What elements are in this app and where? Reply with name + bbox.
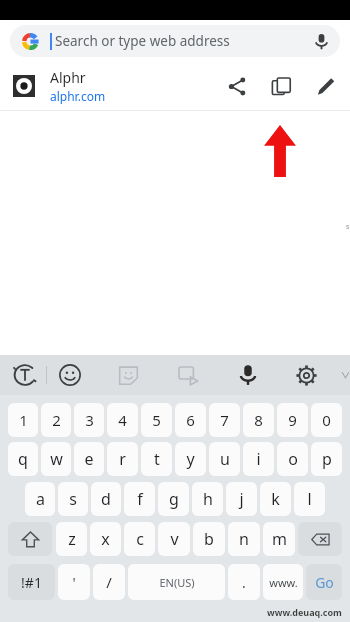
button[interactable]: g <box>158 482 189 516</box>
button[interactable]: i <box>243 442 274 476</box>
button[interactable]: u <box>209 442 240 476</box>
staticText: i <box>256 448 261 470</box>
button[interactable]: Shift <box>8 522 52 556</box>
staticText: 9 <box>288 410 297 430</box>
button[interactable]: v <box>158 522 190 556</box>
button[interactable]: p <box>311 442 342 476</box>
staticText: x <box>101 528 110 550</box>
staticText: n <box>239 528 249 550</box>
staticText: o <box>288 448 298 470</box>
button[interactable]: a <box>25 482 55 516</box>
button[interactable]: 7 <box>209 403 240 437</box>
staticText: e <box>84 448 94 470</box>
staticText: u <box>220 448 230 470</box>
staticText: Go <box>315 573 334 592</box>
button[interactable]: l <box>294 482 325 516</box>
button[interactable]: d <box>91 482 121 516</box>
staticText: m <box>272 528 287 550</box>
button[interactable]: Emoji <box>55 360 85 390</box>
button[interactable]: k <box>260 482 291 516</box>
button[interactable]: Translate <box>10 360 40 390</box>
button[interactable]: EN(US) <box>128 564 225 600</box>
staticText: Search or type web address <box>55 32 230 50</box>
staticText: q <box>18 448 28 470</box>
button[interactable]: Voice input <box>233 360 263 390</box>
button[interactable]: 5 <box>141 403 172 437</box>
button[interactable]: b <box>193 522 225 556</box>
button[interactable]: e <box>74 442 104 476</box>
button[interactable]: 0 <box>311 403 342 437</box>
staticText: 8 <box>254 410 263 430</box>
button[interactable]: GIF <box>173 360 203 390</box>
button[interactable]: 4 <box>107 403 138 437</box>
staticText: j <box>239 488 244 510</box>
button[interactable]: www. <box>263 564 303 600</box>
button[interactable]: h <box>192 482 223 516</box>
button[interactable]: o <box>277 442 308 476</box>
staticText: k <box>271 488 280 510</box>
button[interactable]: Tabs <box>266 71 296 101</box>
staticText: Alphr <box>50 68 86 87</box>
staticText: l <box>307 488 312 510</box>
staticText: c <box>136 528 144 550</box>
button[interactable]: Stickers <box>113 360 143 390</box>
button[interactable]: Share <box>222 71 252 101</box>
button[interactable]: Search or type web address <box>10 25 340 57</box>
button[interactable]: x <box>90 522 121 556</box>
staticText: 6 <box>186 410 195 430</box>
staticText: b <box>204 528 214 550</box>
staticText: w <box>50 448 63 470</box>
staticText: r <box>119 448 126 470</box>
button[interactable]: Collapse <box>341 360 350 390</box>
button[interactable]: !#1 <box>8 564 55 600</box>
button[interactable]: r <box>107 442 138 476</box>
staticText: a <box>36 488 45 510</box>
button[interactable]: ' <box>58 564 90 600</box>
button[interactable]: m <box>263 522 295 556</box>
staticText: t <box>154 448 160 470</box>
staticText: z <box>68 528 76 550</box>
staticText: . <box>242 573 246 592</box>
staticText: EN(US) <box>159 575 195 590</box>
staticText: alphr.com <box>50 88 106 104</box>
button[interactable]: j <box>226 482 257 516</box>
button[interactable]: Go <box>306 564 342 600</box>
staticText: / <box>106 572 112 592</box>
button[interactable]: z <box>56 522 87 556</box>
button[interactable]: 8 <box>243 403 274 437</box>
button[interactable]: Backspace <box>298 522 342 556</box>
staticText: 2 <box>52 410 61 430</box>
staticText: 1 <box>19 410 28 430</box>
staticText: p <box>322 448 332 470</box>
button[interactable]: c <box>124 522 155 556</box>
button[interactable]: y <box>175 442 206 476</box>
button[interactable]: t <box>141 442 172 476</box>
button[interactable]: Edit <box>310 71 340 101</box>
staticText: f <box>137 488 143 510</box>
button[interactable]: 3 <box>74 403 104 437</box>
staticText: 3 <box>85 410 94 430</box>
button[interactable]: n <box>228 522 260 556</box>
button[interactable]: / <box>93 564 125 600</box>
button[interactable]: f <box>124 482 155 516</box>
button[interactable]: 1 <box>8 403 38 437</box>
button[interactable]: w <box>41 442 71 476</box>
staticText: s <box>69 488 77 510</box>
staticText: 5 <box>152 410 161 430</box>
staticText: s <box>346 222 350 232</box>
button[interactable]: q <box>8 442 38 476</box>
button[interactable]: s <box>58 482 88 516</box>
staticText: ' <box>72 573 76 592</box>
staticText: 4 <box>118 410 127 430</box>
staticText: www. <box>269 575 298 590</box>
button[interactable]: 2 <box>41 403 71 437</box>
staticText: !#1 <box>21 573 42 592</box>
staticText: y <box>186 448 195 470</box>
button[interactable]: Voice search <box>306 26 336 56</box>
staticText: v <box>170 528 179 550</box>
button[interactable]: . <box>228 564 260 600</box>
button[interactable]: 9 <box>277 403 308 437</box>
button[interactable]: Settings <box>291 360 321 390</box>
staticText: d <box>101 488 111 510</box>
button[interactable]: 6 <box>175 403 206 437</box>
